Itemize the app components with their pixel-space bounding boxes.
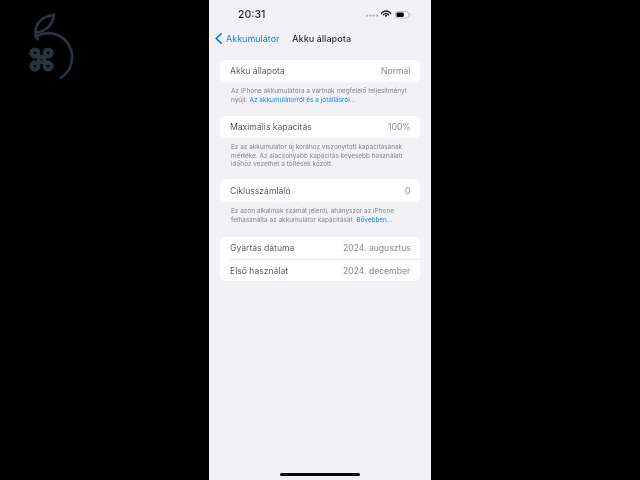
staticText: Maximális kapacitás: [230, 122, 312, 132]
staticText: Első használat: [230, 266, 289, 276]
staticText: Az iPhone akkumulátora a vártnak megfele…: [231, 87, 417, 103]
staticText: Gyártás dátuma: [230, 243, 295, 253]
button[interactable]: Back to Akkumulátor: [212, 31, 283, 46]
other: App logo: [20, 10, 80, 84]
staticText: 2024. augusztus: [343, 243, 411, 253]
button[interactable]: Gyártás dátuma: [220, 237, 420, 259]
staticText: Normál: [381, 66, 411, 76]
button[interactable]: Akku állapota: [220, 60, 420, 82]
staticText: Akku állapota: [230, 66, 285, 76]
staticText: Ez azon alkalmak számát jelenti, ahánysz…: [231, 207, 417, 223]
staticText: Akkumulátor: [226, 33, 280, 44]
staticText: 2024. december: [343, 266, 411, 276]
button[interactable]: Első használat: [220, 260, 420, 281]
staticText: Ciklusszámláló: [230, 186, 291, 196]
staticText: 20:31: [238, 8, 266, 20]
button[interactable]: Maximális kapacitás: [220, 116, 420, 138]
staticText: 100%: [388, 122, 411, 132]
staticText: Akku állapota: [292, 33, 352, 44]
staticText: Ez az akkumulátor új korához viszonyítot…: [231, 143, 417, 167]
staticText: 0: [405, 186, 411, 196]
button[interactable]: Ciklusszámláló: [220, 179, 420, 202]
